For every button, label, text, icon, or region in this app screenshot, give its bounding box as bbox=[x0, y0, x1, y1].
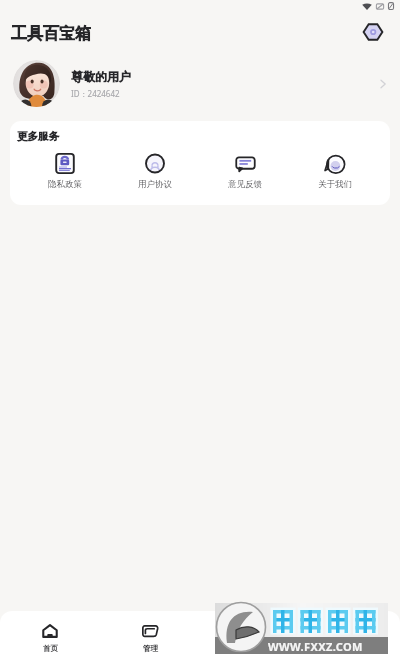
staticText: 工具 bbox=[243, 644, 258, 653]
staticText: 工具百宝箱 bbox=[11, 24, 91, 44]
button[interactable]: Settings bbox=[362, 21, 384, 43]
staticText: 更多服务 bbox=[17, 130, 59, 143]
staticText: 我的 bbox=[343, 644, 358, 653]
staticText: 关于我们 bbox=[318, 179, 352, 190]
staticText: 尊敬的用户 bbox=[71, 69, 131, 84]
staticText: ID：2424642 bbox=[71, 88, 120, 99]
button[interactable]: 管理 bbox=[100, 611, 200, 667]
staticText: 管理 bbox=[143, 644, 158, 653]
button[interactable]: 意见反馈 bbox=[200, 153, 290, 190]
staticText: WWW.FXXZ.COM bbox=[268, 639, 363, 654]
button[interactable]: 用户协议 bbox=[110, 153, 200, 190]
staticText: 用户协议 bbox=[138, 179, 172, 190]
staticText: 隐私政策 bbox=[48, 179, 82, 190]
button[interactable]: 工具 bbox=[200, 611, 300, 667]
staticText: 意见反馈 bbox=[228, 179, 262, 190]
staticText: 首页 bbox=[43, 644, 58, 653]
button[interactable]: 我的 bbox=[300, 611, 400, 667]
button[interactable]: 首页 bbox=[0, 611, 100, 667]
button[interactable]: 隐私政策 bbox=[20, 153, 110, 190]
button[interactable]: 尊敬的用户 bbox=[0, 52, 400, 112]
button[interactable]: 关于我们 bbox=[290, 153, 380, 190]
